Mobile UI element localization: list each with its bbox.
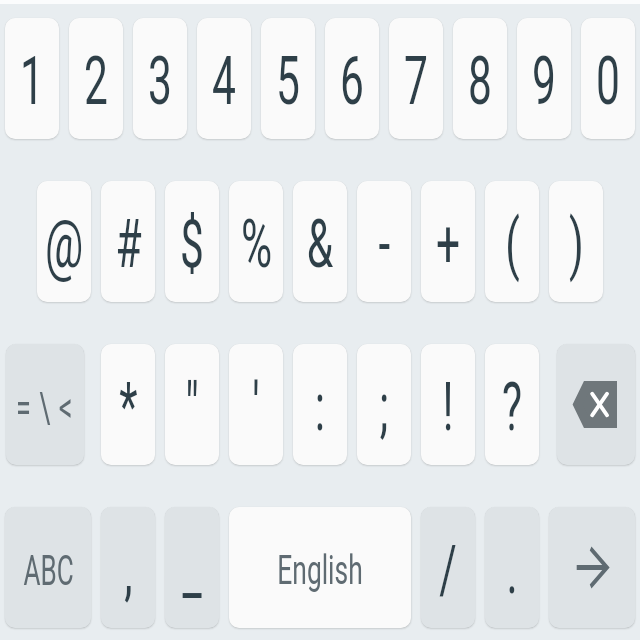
staticText: 8 — [468, 42, 492, 119]
button[interactable]: # — [101, 181, 155, 302]
staticText: 7 — [404, 42, 428, 119]
staticText: & — [306, 205, 334, 282]
button[interactable]: Letters — [5, 507, 91, 628]
staticText: $ — [180, 205, 204, 282]
staticText: ' — [252, 368, 260, 445]
button[interactable]: % — [229, 181, 283, 302]
button[interactable]: + — [421, 181, 475, 302]
staticText: ; — [379, 368, 388, 445]
button[interactable]: * — [101, 344, 155, 465]
button[interactable]: : — [293, 344, 347, 465]
button[interactable]: 5 — [261, 18, 315, 139]
button[interactable]: Enter — [549, 507, 635, 628]
button[interactable]: ' — [229, 344, 283, 465]
staticText: * — [119, 368, 138, 445]
button[interactable]: 8 — [453, 18, 507, 139]
button[interactable]: ( — [485, 181, 539, 302]
staticText: @ — [45, 205, 83, 282]
button[interactable]: 3 — [133, 18, 187, 139]
button[interactable]: 7 — [389, 18, 443, 139]
staticText: ( — [505, 205, 520, 282]
staticText: % — [241, 205, 272, 282]
staticText: 5 — [276, 42, 300, 119]
staticText: " — [185, 368, 199, 445]
staticText: 1 — [20, 42, 44, 119]
button[interactable]: @ — [37, 181, 91, 302]
staticText: ABC — [23, 545, 74, 594]
button[interactable]: - — [357, 181, 411, 302]
button[interactable]: More symbols — [6, 344, 84, 465]
staticText: + — [436, 205, 460, 282]
staticText: 6 — [340, 42, 364, 119]
button[interactable]: ! — [421, 344, 475, 465]
staticText: 2 — [84, 42, 108, 119]
staticText: =\< — [16, 382, 81, 431]
button[interactable]: 1 — [5, 18, 59, 139]
staticText: ? — [502, 368, 522, 445]
button[interactable]: & — [293, 181, 347, 302]
staticText: 3 — [148, 42, 172, 119]
staticText: , — [124, 531, 133, 608]
button[interactable]: 2 — [69, 18, 123, 139]
button[interactable]: / — [421, 507, 475, 628]
button[interactable]: " — [165, 344, 219, 465]
staticText: - — [378, 205, 391, 282]
button[interactable]: ? — [485, 344, 539, 465]
staticText: . — [506, 531, 518, 608]
button[interactable]: 4 — [197, 18, 251, 139]
button[interactable]: ; — [357, 344, 411, 465]
staticText: English — [277, 546, 363, 593]
staticText: _ — [182, 531, 202, 608]
button[interactable]: 9 — [517, 18, 571, 139]
staticText: : — [315, 368, 325, 445]
staticText: / — [439, 531, 457, 608]
button[interactable]: 6 — [325, 18, 379, 139]
button[interactable]: $ — [165, 181, 219, 302]
staticText: 0 — [596, 42, 620, 119]
staticText: ! — [442, 368, 454, 445]
staticText: 4 — [212, 42, 236, 119]
button[interactable]: _ — [165, 507, 219, 628]
staticText: ) — [569, 205, 584, 282]
button[interactable]: . — [485, 507, 539, 628]
staticText: 9 — [532, 42, 556, 119]
button[interactable]: 0 — [581, 18, 635, 139]
staticText: # — [115, 205, 142, 282]
button[interactable]: English space — [229, 507, 411, 628]
button[interactable]: Backspace — [557, 344, 635, 465]
button[interactable]: , — [101, 507, 155, 628]
button[interactable]: ) — [549, 181, 603, 302]
